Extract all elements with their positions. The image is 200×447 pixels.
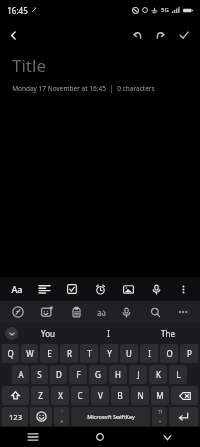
button[interactable]: Microsoft SwiftKey — [71, 407, 150, 426]
staticText: F — [76, 369, 81, 380]
button[interactable]: C — [71, 386, 89, 405]
button[interactable]: T — [80, 344, 98, 363]
button[interactable]: H — [109, 365, 127, 384]
staticText: G — [95, 369, 101, 380]
staticText: Monday 17 November at 16:45 — [12, 84, 106, 93]
staticText: L — [176, 369, 181, 380]
button[interactable]: Home — [89, 427, 111, 447]
button[interactable]: Text formatting — [35, 280, 54, 299]
button[interactable]: Clipboard — [67, 303, 86, 322]
button[interactable]: More options — [175, 281, 192, 298]
staticText: Aa — [11, 283, 23, 295]
staticText: ' — [61, 409, 63, 416]
staticText: E — [47, 348, 52, 359]
button[interactable]: G — [89, 365, 107, 384]
button[interactable]: Aa — [8, 280, 26, 298]
staticText: D — [56, 369, 62, 380]
button[interactable]: R — [60, 344, 78, 363]
button[interactable]: F — [69, 365, 87, 384]
staticText: Title — [12, 54, 46, 77]
button[interactable]: Recent apps — [22, 427, 44, 447]
button[interactable]: Undo — [128, 26, 147, 45]
staticText: 123 — [9, 412, 22, 422]
button[interactable]: More — [174, 303, 192, 321]
button[interactable]: Search — [146, 303, 165, 322]
staticText: I — [148, 348, 151, 359]
button[interactable]: Shift — [2, 386, 29, 405]
staticText: 0 characters — [117, 84, 155, 93]
button[interactable]: S — [31, 365, 48, 384]
button[interactable]: A — [12, 365, 29, 384]
button[interactable]: J — [129, 365, 147, 384]
button[interactable]: O — [160, 344, 178, 363]
button[interactable]: Stickers — [37, 302, 57, 322]
button[interactable]: Checklist — [63, 280, 81, 298]
button[interactable]: SwiftKey menu — [8, 302, 28, 322]
button[interactable]: B — [111, 386, 129, 405]
staticText: R — [67, 348, 72, 359]
button[interactable]: Y — [100, 344, 118, 363]
button[interactable]: Back — [4, 26, 23, 45]
button[interactable]: E — [40, 344, 58, 363]
button[interactable]: X — [51, 386, 69, 405]
button[interactable]: K — [149, 365, 167, 384]
button[interactable]: Save — [174, 25, 194, 45]
button[interactable]: Backspace — [171, 386, 198, 405]
button[interactable]: Redo — [151, 26, 170, 45]
button[interactable]: Period — [152, 407, 167, 426]
staticText: A — [18, 369, 24, 380]
staticText: Q — [7, 348, 14, 359]
staticText: You — [41, 328, 55, 339]
staticText: 16:45 — [7, 5, 28, 16]
staticText: Y — [107, 348, 112, 359]
button[interactable]: Enter — [169, 407, 198, 426]
button[interactable]: Expand predictions — [5, 327, 18, 340]
staticText: H — [115, 369, 121, 380]
button[interactable]: Comma — [54, 407, 69, 426]
button[interactable]: Z — [31, 386, 49, 405]
staticText: S — [37, 369, 42, 380]
button[interactable]: aა — [95, 305, 108, 320]
button[interactable]: Back — [156, 427, 178, 447]
staticText: Z — [38, 390, 43, 401]
staticText: U — [126, 348, 132, 359]
button[interactable]: You — [18, 323, 78, 343]
staticText: ?! — [158, 409, 162, 416]
staticText: K — [156, 369, 161, 380]
staticText: I — [107, 328, 110, 339]
button[interactable]: V — [91, 386, 109, 405]
staticText: B — [117, 390, 123, 401]
staticText: C — [77, 390, 83, 401]
staticText: Microsoft SwiftKey — [87, 413, 135, 420]
button[interactable]: Emoji — [30, 407, 52, 426]
staticText: aა — [97, 307, 106, 318]
button[interactable]: Q — [2, 344, 19, 363]
button[interactable]: 123 — [2, 407, 28, 426]
staticText: The — [161, 328, 175, 339]
button[interactable]: U — [120, 344, 138, 363]
staticText: V — [98, 390, 103, 401]
staticText: M — [156, 390, 164, 401]
staticText: , — [61, 416, 63, 424]
button[interactable]: M — [151, 386, 169, 405]
button[interactable]: D — [50, 365, 67, 384]
button[interactable]: Reminder — [91, 280, 110, 299]
button[interactable]: L — [169, 365, 187, 384]
button[interactable]: P — [180, 344, 198, 363]
button[interactable]: Insert image — [119, 280, 138, 299]
button[interactable]: I — [78, 323, 138, 343]
staticText: . — [159, 416, 161, 424]
button[interactable]: Voice input — [117, 303, 136, 322]
button[interactable]: N — [131, 386, 149, 405]
staticText: N — [137, 390, 144, 401]
staticText: P — [187, 348, 192, 359]
button[interactable]: Voice note — [147, 280, 166, 299]
button[interactable]: The — [138, 323, 198, 343]
staticText: X — [58, 390, 63, 401]
staticText: W — [26, 348, 34, 359]
button[interactable]: I — [140, 344, 158, 363]
staticText: 5G — [161, 6, 169, 14]
staticText: O — [166, 348, 173, 359]
button[interactable]: W — [21, 344, 38, 363]
staticText: J — [137, 369, 140, 380]
